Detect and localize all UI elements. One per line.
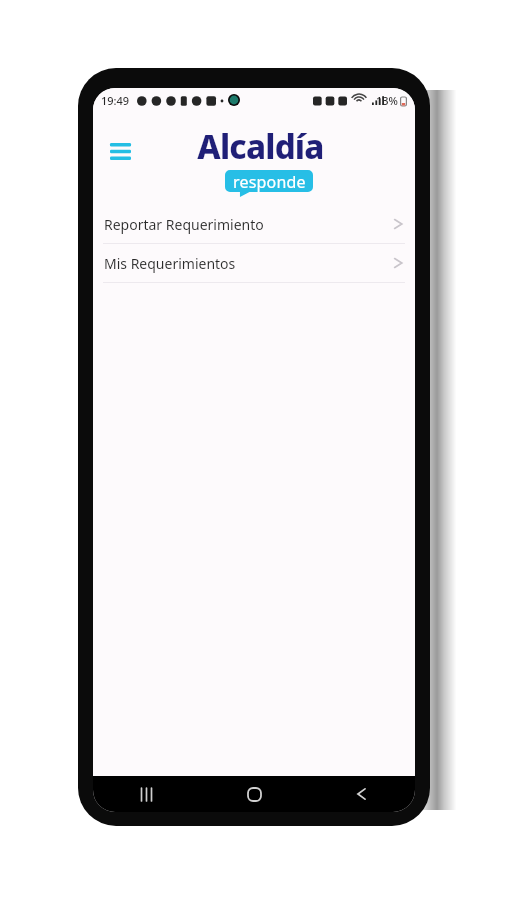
staticText: 19:49 [101,93,130,108]
staticText: Reportar Requerimiento [104,215,393,234]
button[interactable]: Mis Requerimientos [93,244,415,282]
button[interactable]: Home [201,776,308,812]
staticText: 13% [376,93,398,108]
button[interactable]: Reportar Requerimiento [93,205,415,243]
button[interactable]: Back [308,776,415,812]
staticText: Mis Requerimientos [104,254,393,273]
staticText: responde [233,171,306,193]
button[interactable]: Recent apps [93,776,201,812]
staticText: Alcaldía [197,124,324,169]
button[interactable]: Menu [103,134,137,168]
